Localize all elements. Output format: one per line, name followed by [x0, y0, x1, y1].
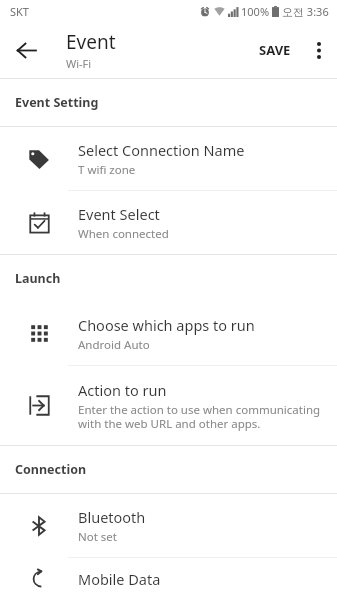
staticText: Connection	[15, 461, 87, 478]
staticText: SAVE	[259, 41, 291, 59]
staticText: When connected	[78, 226, 169, 242]
button[interactable]: Choose which apps to run	[0, 302, 337, 365]
staticText: Action to run	[78, 380, 167, 400]
staticText: Choose which apps to run	[78, 315, 255, 335]
button[interactable]: Event Select	[0, 191, 337, 254]
staticText: Launch	[15, 270, 61, 287]
button[interactable]: Action to run	[0, 366, 337, 445]
staticText: Enter the action to use when communicati…	[78, 402, 323, 432]
staticText: 100%	[241, 4, 270, 19]
staticText: Event	[66, 29, 116, 55]
staticText: T wifi zone	[78, 162, 136, 178]
button[interactable]: Mobile Data	[0, 558, 337, 600]
staticText: Bluetooth	[78, 507, 146, 527]
staticText: Mobile Data	[78, 569, 161, 589]
staticText: Android Auto	[78, 337, 150, 353]
staticText: Event Setting	[15, 94, 99, 111]
staticText: 오전 3:36	[282, 4, 329, 19]
button[interactable]: Bluetooth	[0, 494, 337, 557]
button[interactable]: Back	[6, 30, 46, 70]
staticText: Select Connection Name	[78, 140, 245, 160]
button[interactable]: More options	[301, 32, 337, 68]
button[interactable]: Select Connection Name	[0, 127, 337, 190]
button[interactable]: SAVE	[249, 31, 301, 69]
staticText: Not set	[78, 529, 117, 545]
staticText: SKT	[10, 4, 29, 19]
staticText: Event Select	[78, 204, 160, 224]
staticText: Wi-Fi	[66, 56, 92, 71]
